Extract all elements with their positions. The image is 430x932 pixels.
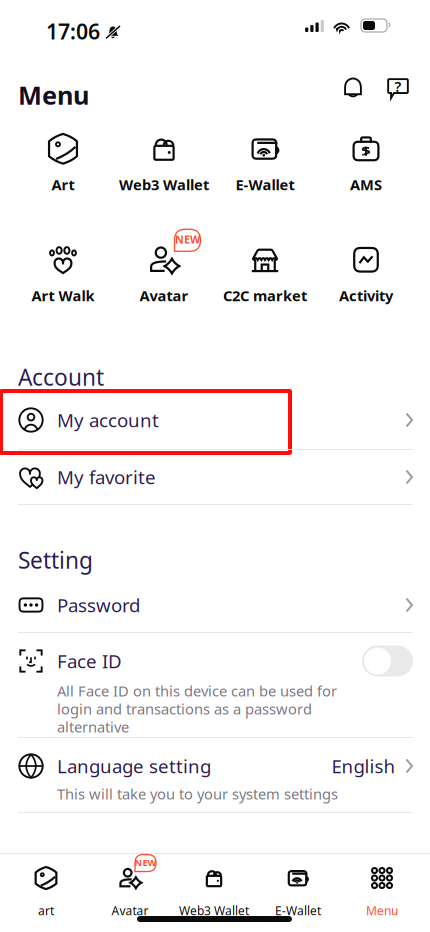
- staticText: Avatar: [139, 286, 188, 305]
- button[interactable]: Web3 Wallet: [172, 864, 256, 921]
- button[interactable]: Art: [12, 136, 113, 192]
- staticText: NEW: [134, 856, 156, 869]
- staticText: All Face ID on this device can be used f…: [57, 681, 337, 736]
- staticText: 17:06: [46, 17, 100, 45]
- staticText: AMS: [350, 175, 382, 194]
- button[interactable]: art: [4, 864, 88, 921]
- staticText: English: [331, 754, 395, 778]
- staticText: Setting: [18, 545, 93, 575]
- button[interactable]: Art Walk: [12, 247, 113, 303]
- button[interactable]: Help: [381, 71, 415, 105]
- staticText: Language setting: [57, 754, 211, 778]
- staticText: My favorite: [57, 465, 156, 489]
- staticText: My account: [57, 408, 159, 432]
- button[interactable]: Menu: [340, 864, 424, 921]
- staticText: Web3 Wallet: [179, 902, 249, 918]
- staticText: E-Wallet: [235, 175, 294, 194]
- staticText: Art: [51, 175, 74, 194]
- button[interactable]: Web3 Wallet: [113, 136, 214, 192]
- button[interactable]: Activity: [315, 247, 416, 303]
- staticText: E-Wallet: [275, 902, 321, 918]
- button[interactable]: NEW: [88, 864, 172, 921]
- staticText: NEW: [175, 232, 200, 246]
- button[interactable]: E-Wallet: [214, 136, 315, 192]
- staticText: This will take you to your system settin…: [57, 784, 338, 803]
- button[interactable]: Face ID: [0, 637, 430, 685]
- button[interactable]: Password: [0, 578, 430, 632]
- staticText: Password: [57, 593, 140, 617]
- button[interactable]: Menu: [18, 81, 89, 109]
- staticText: ?: [394, 77, 401, 96]
- button[interactable]: My account: [0, 391, 430, 449]
- button[interactable]: E-Wallet: [256, 864, 340, 921]
- staticText: art: [38, 902, 54, 918]
- staticText: Face ID: [57, 649, 122, 673]
- staticText: Avatar: [111, 902, 148, 918]
- button[interactable]: C2C market: [214, 247, 315, 303]
- staticText: Account: [18, 362, 104, 392]
- staticText: Art Walk: [31, 286, 94, 305]
- staticText: Menu: [366, 902, 398, 918]
- button[interactable]: Notifications: [336, 71, 370, 105]
- staticText: Activity: [339, 286, 393, 305]
- staticText: Web3 Wallet: [119, 175, 209, 194]
- staticText: C2C market: [223, 286, 307, 305]
- button[interactable]: My favorite: [0, 450, 430, 504]
- staticText: Menu: [18, 78, 89, 112]
- button[interactable]: NEW: [113, 247, 214, 303]
- button[interactable]: AMS: [315, 136, 416, 192]
- button[interactable]: Language setting: [0, 742, 430, 790]
